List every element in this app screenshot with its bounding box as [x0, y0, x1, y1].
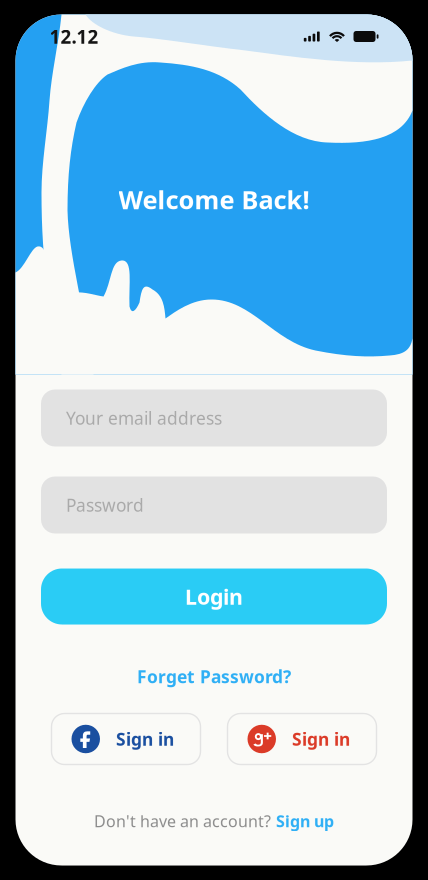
- staticText: Sign up: [276, 810, 334, 832]
- button[interactable]: Sign up: [276, 810, 334, 832]
- button[interactable]: Login: [41, 568, 387, 624]
- staticText: Welcome Back!: [118, 182, 309, 216]
- staticText: Forget Password?: [137, 665, 291, 688]
- button[interactable]: Sign in: [51, 713, 200, 764]
- button[interactable]: Sign in: [227, 713, 376, 764]
- staticText: Don't have an account?: [94, 810, 271, 832]
- staticText: Password: [66, 493, 144, 516]
- button[interactable]: Password: [41, 476, 387, 533]
- staticText: Login: [185, 582, 243, 611]
- button[interactable]: Your email address: [41, 389, 387, 446]
- staticText: Your email address: [66, 406, 222, 429]
- button[interactable]: Forget Password?: [137, 663, 291, 689]
- staticText: Sign in: [116, 727, 174, 750]
- staticText: Sign in: [292, 727, 350, 750]
- staticText: 12.12: [49, 24, 98, 49]
